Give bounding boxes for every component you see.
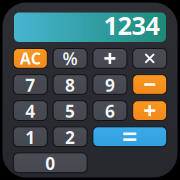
staticText: AC xyxy=(20,48,41,69)
button[interactable]: 1 xyxy=(13,127,47,147)
staticText: 9 xyxy=(105,73,115,96)
button[interactable]: 2 xyxy=(53,127,87,147)
button[interactable]: 8 xyxy=(53,75,87,94)
staticText: 5 xyxy=(65,100,75,123)
staticText: % xyxy=(63,47,78,70)
button[interactable]: Plus xyxy=(133,101,167,120)
staticText: 0 xyxy=(45,152,55,175)
staticText: 1 xyxy=(25,126,35,149)
button[interactable]: Equals xyxy=(93,127,167,147)
button[interactable]: Plus xyxy=(93,48,127,68)
staticText: 7 xyxy=(25,73,35,96)
button[interactable]: 4 xyxy=(13,101,47,120)
staticText: 6 xyxy=(105,100,115,123)
button[interactable]: Minus xyxy=(133,75,167,94)
staticText: 1234 xyxy=(103,8,159,42)
button[interactable]: 0 xyxy=(13,153,87,173)
staticText: 8 xyxy=(65,73,75,96)
button[interactable]: Multiply xyxy=(133,48,167,68)
button[interactable]: All clear xyxy=(13,48,47,68)
staticText: 2 xyxy=(65,126,75,149)
button[interactable]: 6 xyxy=(93,101,127,120)
button[interactable]: Percent xyxy=(53,48,87,68)
button[interactable]: 9 xyxy=(93,75,127,94)
staticText: 4 xyxy=(25,100,35,123)
button[interactable]: 5 xyxy=(53,101,87,120)
button[interactable]: 7 xyxy=(13,75,47,94)
